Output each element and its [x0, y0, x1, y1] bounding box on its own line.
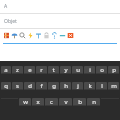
button[interactable]: t — [48, 66, 59, 74]
button[interactable]: Close — [67, 32, 74, 39]
button[interactable]: k — [84, 82, 95, 90]
staticText: t — [52, 66, 55, 74]
button[interactable]: l — [96, 82, 107, 90]
button[interactable]: Umbrella — [11, 32, 18, 39]
staticText: Objet — [4, 18, 17, 25]
button[interactable]: Help — [51, 32, 58, 39]
button[interactable]: A — [0, 0, 120, 13]
button[interactable]: Lock — [43, 32, 50, 39]
button[interactable]: o — [96, 66, 107, 74]
staticText: n — [92, 98, 96, 106]
button[interactable]: Objet — [0, 14, 120, 28]
staticText: p — [112, 66, 116, 74]
button[interactable]: v — [59, 98, 72, 106]
button[interactable]: j — [72, 82, 83, 90]
button[interactable]: e — [24, 66, 35, 74]
staticText: r — [40, 66, 43, 74]
button[interactable]: Minus — [59, 32, 66, 39]
staticText: k — [88, 82, 92, 90]
button[interactable]: Flash — [27, 32, 34, 39]
staticText: a — [4, 66, 8, 74]
button[interactable]: x — [32, 98, 44, 106]
staticText: w — [23, 98, 28, 106]
button[interactable]: y — [60, 66, 71, 74]
button[interactable]: q — [1, 82, 11, 90]
button[interactable]: w — [19, 98, 31, 106]
staticText: c — [50, 98, 53, 106]
staticText: d — [28, 82, 32, 90]
button[interactable]: c — [45, 98, 58, 106]
staticText: f — [40, 82, 43, 90]
staticText: s — [16, 82, 19, 90]
button[interactable]: Search — [19, 32, 26, 39]
button[interactable]: p — [108, 66, 119, 74]
button[interactable]: f — [36, 82, 47, 90]
staticText: q — [4, 82, 8, 90]
staticText: y — [64, 66, 68, 74]
button[interactable]: d — [24, 82, 35, 90]
staticText: e — [28, 66, 32, 74]
staticText: l — [101, 82, 103, 90]
staticText: u — [76, 66, 80, 74]
button[interactable]: i — [84, 66, 95, 74]
staticText: g — [52, 82, 56, 90]
staticText: m — [111, 82, 117, 90]
staticText: v — [64, 98, 68, 106]
staticText: A — [4, 3, 8, 10]
button[interactable]: z — [12, 66, 23, 74]
staticText: j — [77, 82, 79, 90]
button[interactable]: Pin — [35, 32, 42, 39]
staticText: z — [16, 66, 19, 74]
button[interactable]: n — [87, 98, 100, 106]
button[interactable]: s — [12, 82, 23, 90]
button[interactable]: g — [48, 82, 59, 90]
button[interactable]: a — [1, 66, 11, 74]
staticText: h — [64, 82, 68, 90]
button[interactable]: u — [72, 66, 83, 74]
button[interactable]: h — [60, 82, 71, 90]
button[interactable]: b — [73, 98, 86, 106]
staticText: o — [100, 66, 104, 74]
button[interactable]: r — [36, 66, 47, 74]
button[interactable]: m — [108, 82, 119, 90]
staticText: i — [89, 66, 91, 74]
staticText: x — [36, 98, 40, 106]
staticText: b — [78, 98, 82, 106]
button[interactable]: Attachment — [3, 32, 10, 39]
